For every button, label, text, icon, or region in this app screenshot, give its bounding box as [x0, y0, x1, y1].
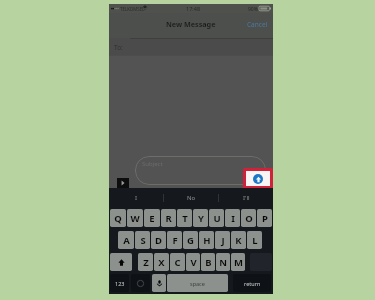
staticText: space — [190, 280, 205, 287]
button[interactable]: H — [199, 231, 214, 249]
button[interactable]: C — [170, 253, 185, 271]
staticText: T — [182, 212, 188, 225]
staticText: N — [219, 256, 227, 269]
staticText: E — [149, 212, 155, 225]
staticText: return — [244, 280, 261, 287]
staticText: To: — [114, 43, 123, 52]
staticText: O — [245, 212, 253, 225]
button[interactable]: X — [154, 253, 169, 271]
button[interactable]: L — [247, 231, 262, 249]
button[interactable]: R — [161, 209, 176, 227]
staticText: K — [235, 234, 242, 247]
button[interactable]: U — [209, 209, 224, 227]
button[interactable]: T — [177, 209, 192, 227]
staticText: C — [174, 256, 181, 269]
button[interactable]: V — [186, 253, 200, 271]
staticText: D — [155, 234, 162, 247]
button[interactable]: M — [231, 253, 245, 271]
button[interactable]: Shift — [110, 253, 132, 271]
button[interactable]: J — [215, 231, 230, 249]
button[interactable]: space — [167, 274, 228, 292]
button[interactable]: E — [144, 209, 160, 227]
button[interactable]: To: — [109, 38, 273, 56]
button[interactable]: D — [151, 231, 166, 249]
button[interactable]: A — [118, 231, 134, 249]
button[interactable]: return — [233, 274, 271, 292]
button[interactable]: O — [241, 209, 256, 227]
staticText: M — [234, 256, 243, 269]
staticText: V — [190, 256, 197, 269]
button[interactable]: P — [257, 209, 272, 227]
staticText: I — [231, 212, 235, 225]
staticText: No — [187, 194, 196, 202]
button[interactable]: Z — [138, 253, 153, 271]
staticText: U — [213, 212, 221, 225]
button[interactable]: Send — [246, 171, 270, 186]
button[interactable]: Y — [193, 209, 208, 227]
button[interactable]: I — [225, 209, 240, 227]
button[interactable]: G — [183, 231, 198, 249]
staticText: G — [187, 234, 194, 247]
staticText: W — [130, 212, 140, 225]
staticText: I — [135, 194, 138, 202]
button[interactable]: Attach photo — [117, 178, 129, 188]
button[interactable]: I'll — [219, 188, 273, 207]
staticText: Subject — [142, 160, 163, 168]
button[interactable]: Subject — [135, 156, 266, 185]
staticText: R — [165, 212, 172, 225]
button[interactable]: 123 — [110, 274, 129, 292]
button[interactable]: F — [167, 231, 182, 249]
staticText: New Message — [166, 19, 216, 29]
button[interactable]: N — [216, 253, 230, 271]
staticText: H — [203, 234, 211, 247]
staticText: F — [172, 234, 178, 247]
button[interactable]: Switch keyboard — [131, 274, 150, 292]
staticText: J — [221, 234, 225, 247]
staticText: Y — [198, 212, 204, 225]
staticText: L — [252, 234, 258, 247]
staticText: 17:48 — [186, 5, 201, 12]
button[interactable]: W — [127, 209, 143, 227]
button[interactable]: K — [231, 231, 246, 249]
staticText: X — [158, 256, 165, 269]
button[interactable]: S — [135, 231, 150, 249]
button[interactable]: No — [164, 188, 218, 207]
button[interactable]: I — [109, 188, 163, 207]
staticText: Cancel — [247, 20, 268, 29]
button[interactable]: Dictate — [152, 274, 166, 292]
staticText: P — [262, 212, 268, 225]
staticText: I'll — [243, 194, 250, 202]
staticText: S — [140, 234, 146, 247]
button[interactable]: Q — [110, 209, 126, 227]
staticText: A — [123, 234, 130, 247]
staticText: Q — [114, 212, 122, 225]
staticText: TELKOMSEL — [120, 6, 145, 12]
staticText: B — [205, 256, 212, 269]
staticText: 90% — [248, 6, 258, 13]
staticText: 123 — [115, 280, 125, 287]
button[interactable]: Cancel — [242, 16, 273, 33]
staticText: Z — [143, 256, 149, 269]
button[interactable]: B — [201, 253, 215, 271]
